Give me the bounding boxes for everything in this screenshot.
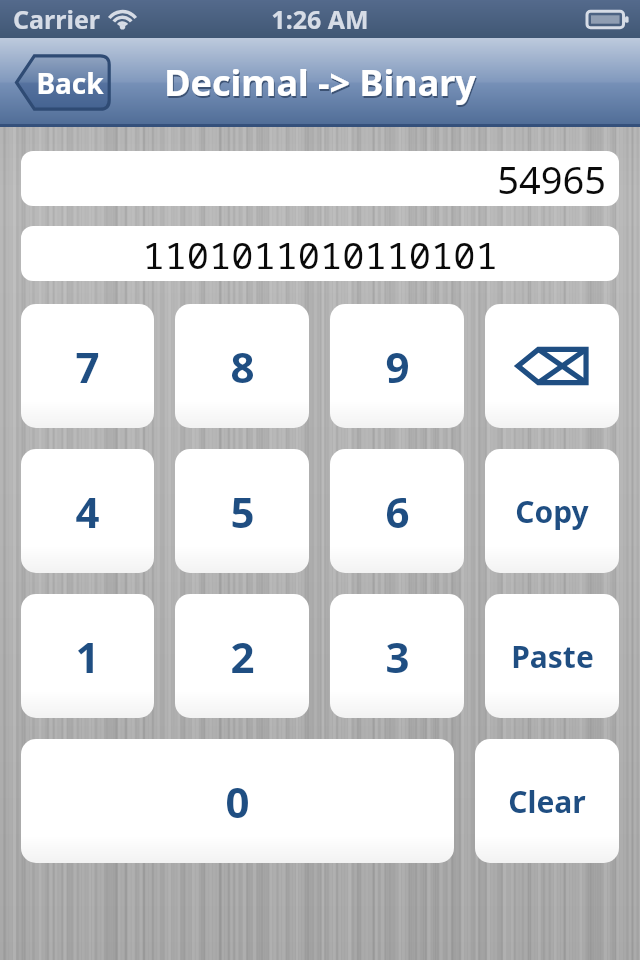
staticText: 3 — [385, 628, 410, 685]
staticText: Back — [36, 64, 104, 102]
staticText: Clear — [508, 781, 586, 822]
button[interactable]: 1 — [21, 594, 154, 718]
staticText: 1101011010110101 — [142, 229, 498, 279]
button[interactable]: Paste — [485, 594, 619, 718]
staticText: 7 — [75, 338, 100, 395]
staticText: 1 — [75, 628, 100, 685]
staticText: Copy — [515, 491, 589, 532]
button[interactable]: 0 — [21, 739, 454, 863]
button[interactable]: 7 — [21, 304, 154, 428]
button[interactable]: Copy — [485, 449, 619, 573]
staticText: 5 — [230, 483, 255, 540]
staticText: Decimal -> Binary — [165, 60, 477, 109]
button[interactable]: 9 — [330, 304, 464, 428]
button[interactable]: Clear — [475, 739, 619, 863]
button[interactable]: Backspace — [485, 304, 619, 428]
staticText: 54965 — [497, 153, 606, 205]
staticText: Paste — [511, 636, 594, 677]
staticText: Decimal -> Binary — [164, 58, 476, 107]
staticText: 6 — [385, 483, 410, 540]
button[interactable]: 4 — [21, 449, 154, 573]
staticText: 9 — [385, 338, 410, 395]
staticText: 0 — [225, 773, 250, 830]
staticText: 8 — [230, 338, 255, 395]
staticText: 1:26 AM — [271, 2, 369, 36]
button[interactable]: 2 — [175, 594, 309, 718]
button[interactable]: 3 — [330, 594, 464, 718]
button[interactable]: 6 — [330, 449, 464, 573]
button[interactable]: Back — [14, 54, 111, 111]
button[interactable]: 8 — [175, 304, 309, 428]
staticText: 2 — [230, 628, 255, 685]
staticText: 4 — [75, 483, 100, 540]
staticText: Carrier — [13, 2, 100, 36]
button[interactable]: 5 — [175, 449, 309, 573]
